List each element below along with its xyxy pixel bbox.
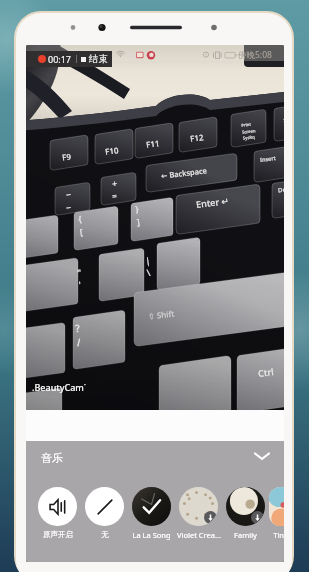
staticText: Del — [277, 185, 284, 195]
staticText: 音乐 — [41, 451, 63, 465]
staticText: ← Backspace — [161, 165, 207, 181]
button[interactable]: Collapse music panel — [250, 445, 274, 469]
staticText: } ] — [135, 203, 141, 227]
staticText: La La Song — [132, 530, 171, 540]
staticText: 结束 — [89, 53, 108, 65]
staticText: F10 — [104, 144, 120, 157]
staticText: F11 — [145, 137, 161, 150]
staticText: .BeautyCam˙ — [32, 381, 86, 393]
staticText: Scroll Lock — [283, 116, 284, 130]
button[interactable]: La La Song — [128, 487, 175, 540]
staticText: Tiny — [273, 530, 284, 540]
staticText: " ' — [76, 266, 83, 291]
button[interactable]: 无 — [81, 487, 128, 539]
staticText: | \ — [144, 254, 152, 279]
staticText: ? / — [74, 321, 83, 349]
staticText: = — [111, 190, 118, 201]
staticText: F12 — [189, 131, 205, 144]
staticText: − — [65, 201, 73, 213]
button[interactable]: 00:17 — [26, 51, 112, 67]
staticText: F9 — [61, 150, 72, 162]
staticText: Insert — [260, 154, 276, 163]
button[interactable]: Violet Crea... — [175, 487, 222, 540]
staticText: − — [65, 188, 73, 200]
button[interactable]: 原声开启 — [34, 487, 81, 539]
button[interactable]: Tiny — [269, 487, 284, 540]
staticText: Violet Crea... — [177, 530, 221, 540]
staticText: Family — [234, 530, 257, 540]
staticText: + — [111, 177, 119, 189]
button[interactable]: Family — [222, 487, 269, 540]
staticText: 00:17 — [48, 53, 72, 65]
staticText: Ctrl — [257, 365, 275, 379]
staticText: ⇧ Shift — [147, 307, 175, 322]
staticText: 无 — [101, 530, 109, 539]
staticText: 傍晚5:08 — [238, 49, 272, 61]
staticText: { [ — [78, 213, 84, 237]
staticText: 原声开启 — [43, 530, 73, 539]
staticText: Enter ↵ — [195, 194, 230, 210]
staticText: Print Screen SysRq — [241, 121, 257, 141]
